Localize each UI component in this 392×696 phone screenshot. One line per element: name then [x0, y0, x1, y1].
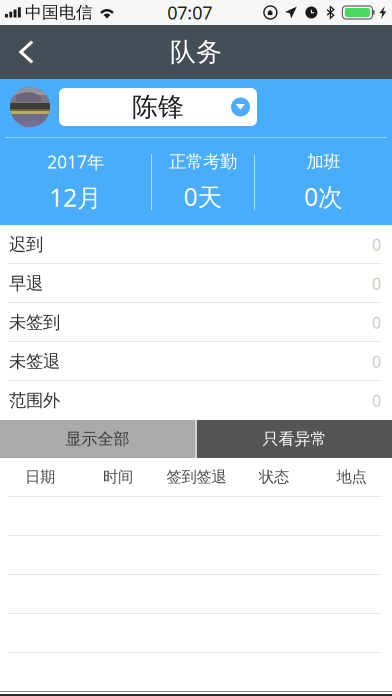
staticText: 未签退: [9, 351, 60, 372]
button[interactable]: 未签退: [0, 342, 392, 381]
button[interactable]: 早退: [0, 264, 392, 303]
button[interactable]: 迟到: [0, 225, 392, 264]
button[interactable]: Back: [0, 25, 50, 79]
staticText: 0: [372, 390, 381, 411]
staticText: 0天: [183, 180, 222, 213]
staticText: 0: [372, 273, 381, 294]
staticText: 2017年: [47, 150, 104, 173]
button[interactable]: 范围外: [0, 381, 392, 420]
staticText: 07:07: [167, 0, 212, 25]
staticText: 0: [372, 351, 381, 372]
staticText: 范围外: [9, 390, 60, 411]
staticText: 队务: [170, 36, 222, 68]
staticText: 时间: [103, 467, 133, 487]
button[interactable]: 显示全部: [0, 420, 195, 458]
staticText: 日期: [25, 467, 55, 487]
staticText: 状态: [259, 467, 289, 487]
staticText: 迟到: [9, 234, 43, 255]
staticText: 0: [372, 312, 381, 333]
staticText: 地点: [336, 467, 366, 487]
staticText: 中国电信: [25, 2, 93, 23]
staticText: 显示全部: [65, 429, 129, 449]
staticText: 早退: [9, 273, 43, 294]
staticText: 只看异常: [262, 429, 326, 449]
staticText: 陈锋: [132, 91, 184, 123]
staticText: 未签到: [9, 312, 60, 333]
staticText: 加班: [306, 151, 340, 173]
staticText: 0: [372, 234, 381, 255]
staticText: 0次: [304, 180, 343, 213]
staticText: 12月: [49, 180, 102, 214]
staticText: 签到签退: [166, 467, 226, 487]
button[interactable]: 陈锋: [59, 88, 257, 126]
staticText: 正常考勤: [169, 151, 237, 173]
button[interactable]: 只看异常: [197, 420, 392, 458]
button[interactable]: 未签到: [0, 303, 392, 342]
